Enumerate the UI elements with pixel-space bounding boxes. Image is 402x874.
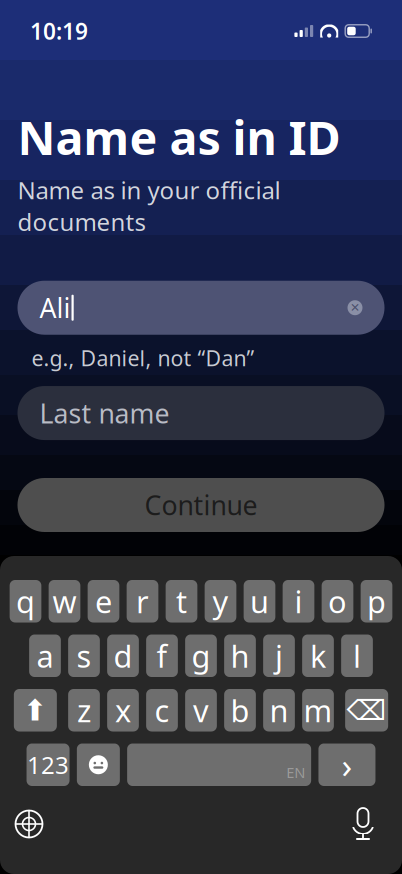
staticText: i bbox=[294, 581, 302, 622]
button[interactable]: n bbox=[263, 689, 295, 731]
button[interactable]: r bbox=[127, 580, 158, 622]
staticText: Last name bbox=[39, 395, 169, 431]
staticText: a bbox=[36, 635, 53, 676]
staticText: 10:19 bbox=[30, 16, 88, 46]
staticText: s bbox=[76, 635, 91, 676]
button[interactable]: l bbox=[341, 634, 373, 677]
button[interactable]: q bbox=[10, 580, 41, 622]
button[interactable]: j bbox=[263, 634, 295, 677]
staticText: o bbox=[328, 581, 347, 622]
staticText: k bbox=[310, 635, 326, 676]
staticText: b bbox=[230, 690, 249, 731]
staticText: Continue bbox=[144, 487, 257, 523]
button[interactable]: Return bbox=[318, 743, 375, 786]
button[interactable]: d bbox=[107, 634, 139, 677]
staticText: x bbox=[115, 690, 131, 731]
staticText: p bbox=[367, 581, 386, 622]
button[interactable]: x bbox=[107, 689, 139, 731]
button[interactable]: a bbox=[29, 634, 61, 677]
button[interactable]: h bbox=[224, 634, 256, 677]
staticText: Name as in your official documents bbox=[17, 174, 280, 238]
staticText: v bbox=[193, 690, 209, 731]
staticText: t bbox=[176, 581, 187, 622]
button[interactable]: y bbox=[205, 580, 236, 622]
staticText: z bbox=[77, 690, 91, 731]
staticText: h bbox=[230, 635, 249, 676]
button[interactable]: w bbox=[49, 580, 80, 622]
staticText: c bbox=[154, 690, 169, 731]
staticText: 123 bbox=[27, 749, 69, 781]
button[interactable]: Ali bbox=[17, 281, 384, 335]
staticText: Ali bbox=[39, 290, 70, 325]
button[interactable]: e bbox=[88, 580, 119, 622]
button[interactable]: p bbox=[361, 580, 392, 622]
staticText: y bbox=[212, 581, 228, 622]
button[interactable]: 123 bbox=[27, 743, 70, 786]
button[interactable]: g bbox=[185, 634, 217, 677]
staticText: f bbox=[156, 635, 167, 676]
staticText: l bbox=[353, 635, 361, 676]
staticText: ⌫ bbox=[347, 694, 387, 726]
button[interactable]: Shift bbox=[14, 689, 57, 731]
staticText: e.g., Daniel, not “Dan” bbox=[31, 344, 254, 372]
staticText: ⬆ bbox=[23, 694, 48, 727]
staticText: e bbox=[95, 581, 112, 622]
staticText: q bbox=[16, 581, 35, 622]
staticText: Name as in ID bbox=[17, 106, 340, 168]
button[interactable]: o bbox=[322, 580, 353, 622]
button[interactable]: Emoji bbox=[77, 743, 120, 786]
button[interactable]: c bbox=[146, 689, 178, 731]
button[interactable]: m bbox=[302, 689, 334, 731]
staticText: r bbox=[136, 581, 149, 622]
button[interactable]: v bbox=[185, 689, 217, 731]
button[interactable]: Dictate bbox=[346, 807, 380, 841]
staticText: › bbox=[341, 742, 352, 788]
staticText: d bbox=[113, 635, 132, 676]
button[interactable]: Delete bbox=[345, 689, 388, 731]
button[interactable]: u bbox=[244, 580, 275, 622]
staticText: ✕ bbox=[350, 301, 360, 314]
button[interactable]: Continue bbox=[17, 478, 384, 532]
button[interactable]: Next keyboard bbox=[12, 807, 46, 841]
button[interactable]: s bbox=[68, 634, 100, 677]
button[interactable]: Last name bbox=[17, 386, 384, 440]
staticText: m bbox=[303, 690, 332, 731]
button[interactable]: k bbox=[302, 634, 334, 677]
staticText: g bbox=[191, 635, 210, 676]
staticText: u bbox=[250, 581, 269, 622]
staticText: EN bbox=[286, 762, 305, 782]
button[interactable]: z bbox=[68, 689, 100, 731]
button[interactable]: i bbox=[283, 580, 314, 622]
staticText: w bbox=[52, 581, 76, 622]
button[interactable]: t bbox=[166, 580, 197, 622]
button[interactable]: b bbox=[224, 689, 256, 731]
staticText: n bbox=[269, 690, 288, 731]
button[interactable]: f bbox=[146, 634, 178, 677]
staticText: j bbox=[275, 635, 283, 676]
button[interactable]: Space bbox=[127, 743, 311, 786]
